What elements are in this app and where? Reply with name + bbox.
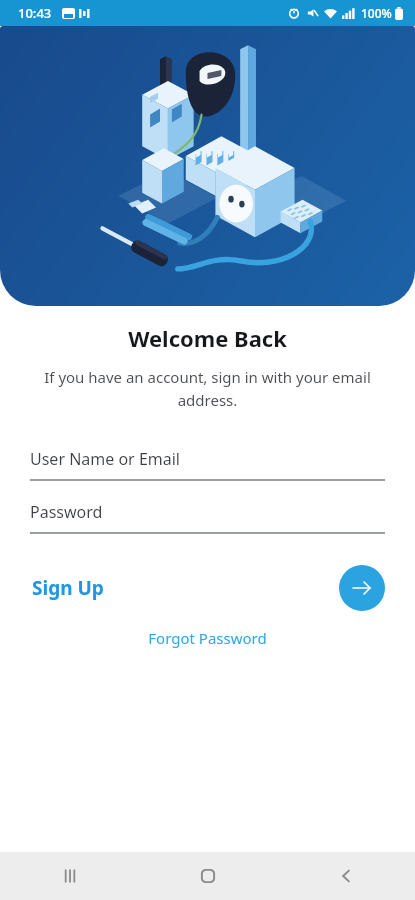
button[interactable]: Recents [0,852,139,900]
button[interactable]: Password [30,501,385,534]
staticText: 100% [361,5,392,21]
button[interactable]: Sign Up [30,569,106,607]
staticText: Sign Up [32,575,104,601]
button[interactable]: Home [139,852,277,900]
button[interactable]: User Name or Email [30,448,385,481]
staticText: User Name or Email [30,448,180,470]
button[interactable]: Forgot Password [0,624,415,652]
button[interactable]: Back [277,852,415,900]
staticText: Forgot Password [148,628,267,648]
staticText: If you have an account, sign in with you… [18,367,397,410]
staticText: 10:43 [18,4,52,22]
staticText: Password [30,501,103,523]
staticText: Welcome Back [0,323,415,353]
button[interactable]: Sign in [339,565,385,611]
